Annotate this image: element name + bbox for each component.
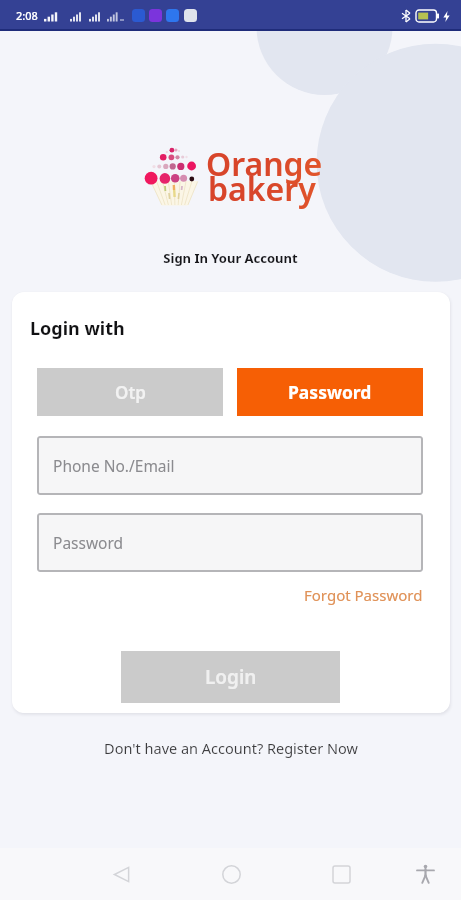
- staticText: Password: [288, 380, 372, 404]
- button[interactable]: Phone No./Email: [37, 436, 423, 495]
- button[interactable]: Password: [37, 513, 423, 572]
- button[interactable]: Don't have an Account? Register Now: [104, 738, 358, 758]
- staticText: 2:08: [16, 8, 38, 23]
- staticText: bakery: [208, 167, 316, 211]
- button[interactable]: Forgot Password: [304, 585, 423, 605]
- staticText: Orange: [206, 142, 323, 186]
- button[interactable]: Home: [211, 854, 251, 894]
- button[interactable]: Otp: [37, 368, 223, 416]
- staticText: Sign In Your Account: [163, 249, 298, 267]
- button[interactable]: Recent apps: [321, 854, 361, 894]
- staticText: Otp: [115, 381, 146, 404]
- staticText: Login: [205, 664, 257, 690]
- button[interactable]: Login: [121, 651, 340, 703]
- button[interactable]: Accessibility: [405, 854, 445, 894]
- button[interactable]: Password: [237, 368, 423, 416]
- staticText: Login with: [30, 316, 125, 341]
- staticText: Phone No./Email: [53, 455, 175, 476]
- staticText: Password: [53, 532, 124, 553]
- button[interactable]: Back: [101, 854, 141, 894]
